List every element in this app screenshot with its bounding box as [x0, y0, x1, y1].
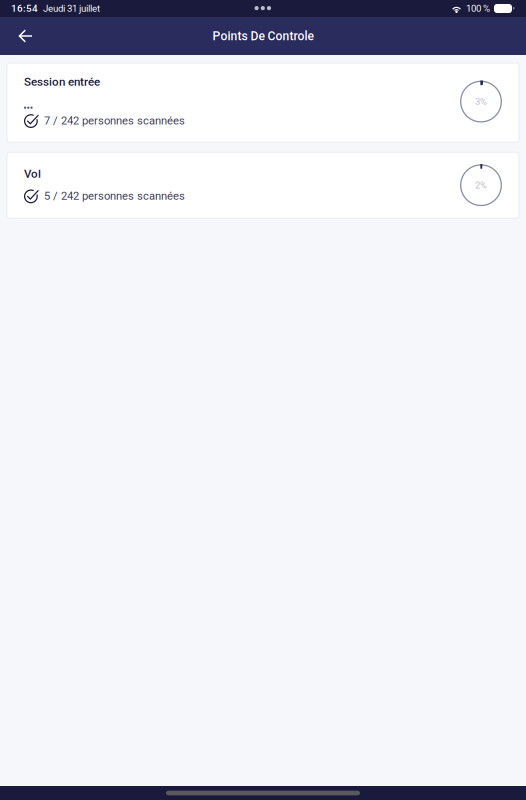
staticText: Points De Controle [212, 29, 313, 43]
button[interactable]: Vol [7, 152, 519, 218]
staticText: 7 / 242 personnes scannées [44, 114, 185, 127]
button[interactable]: Session entrée [7, 63, 519, 142]
staticText: 16:54 [11, 3, 38, 14]
staticText: 2% [475, 180, 487, 191]
staticText: 3% [475, 96, 487, 107]
staticText: Jeudi 31 juillet [43, 3, 100, 14]
staticText: Vol [24, 167, 41, 180]
staticText: 5 / 242 personnes scannées [44, 189, 185, 202]
staticText: 100 % [466, 3, 490, 14]
button[interactable]: Back [0, 17, 48, 55]
staticText: Session entrée [24, 75, 100, 89]
